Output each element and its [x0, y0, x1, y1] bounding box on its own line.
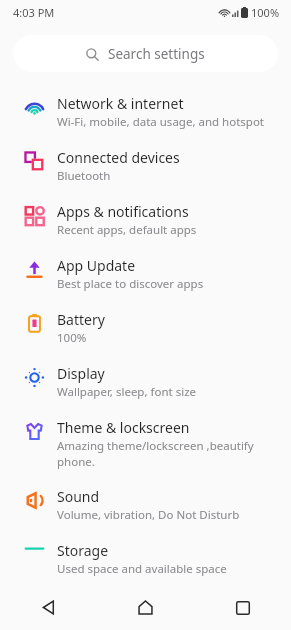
staticText: Battery: [57, 310, 105, 329]
staticText: Best place to discover apps: [57, 276, 204, 292]
button[interactable]: Theme & lockscreen: [0, 409, 291, 478]
button[interactable]: Storage: [0, 532, 291, 585]
staticText: Used space and available space: [57, 561, 227, 576]
staticText: Bluetooth: [57, 168, 111, 184]
button[interactable]: Search settings: [13, 35, 278, 72]
staticText: Theme & lockscreen: [57, 418, 190, 437]
button[interactable]: Recent apps: [194, 585, 291, 630]
staticText: Network & internet: [57, 94, 184, 113]
staticText: Recent apps, default apps: [57, 222, 197, 238]
staticText: Connected devices: [57, 148, 180, 167]
staticText: App Update: [57, 256, 136, 275]
staticText: Apps & notifications: [57, 202, 189, 221]
button[interactable]: Sound: [0, 478, 291, 532]
staticText: Display: [57, 364, 105, 383]
staticText: Search settings: [108, 45, 205, 63]
button[interactable]: Connected devices: [0, 139, 291, 193]
staticText: 100%: [57, 330, 87, 346]
button[interactable]: Network & internet: [0, 85, 291, 139]
staticText: 4:03 PM: [13, 5, 55, 20]
button[interactable]: Back: [0, 585, 97, 630]
button[interactable]: App Update: [0, 247, 291, 301]
staticText: Wallpaper, sleep, font size: [57, 384, 197, 400]
staticText: Wi-Fi, mobile, data usage, and hotspot: [57, 114, 264, 130]
staticText: Storage: [57, 541, 109, 560]
staticText: Volume, vibration, Do Not Disturb: [57, 507, 240, 523]
button[interactable]: Home: [97, 585, 194, 630]
staticText: Amazing theme/lockscreen ,beautify phone…: [57, 438, 254, 469]
button[interactable]: Apps & notifications: [0, 193, 291, 247]
staticText: Sound: [57, 487, 100, 506]
button[interactable]: Display: [0, 355, 291, 409]
staticText: 100%: [251, 5, 280, 20]
button[interactable]: Battery: [0, 301, 291, 355]
